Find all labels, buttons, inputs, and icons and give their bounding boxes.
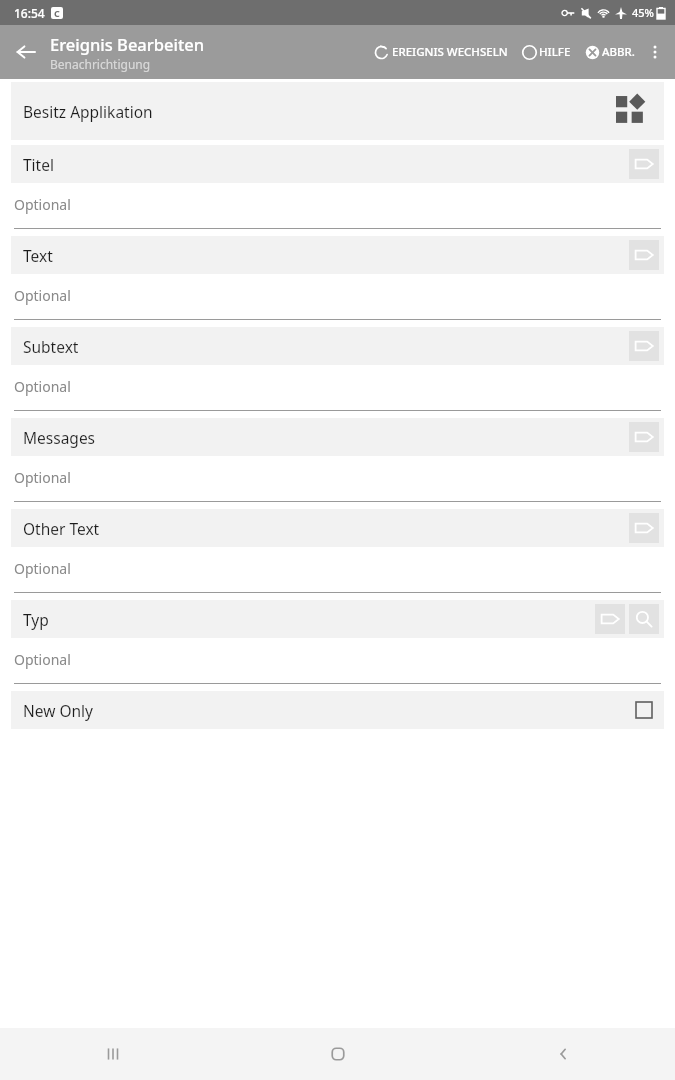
button[interactable]: ABBR.	[581, 38, 639, 66]
button[interactable]: HILFE	[518, 38, 575, 66]
button[interactable]: Besitz Applikation	[11, 82, 664, 140]
staticText: ABBR.	[602, 44, 635, 60]
staticText: Optional	[14, 377, 71, 396]
button[interactable]: EREIGNIS WECHSELN	[370, 38, 512, 66]
staticText: Besitz Applikation	[23, 101, 153, 122]
button[interactable]: Select variable	[629, 331, 659, 361]
staticText: Benachrichtigung	[50, 56, 151, 72]
button[interactable]: Titel	[11, 145, 664, 183]
staticText: Other Text	[23, 518, 100, 539]
button[interactable]: Optional	[14, 274, 661, 320]
staticText: EREIGNIS WECHSELN	[392, 44, 508, 60]
button[interactable]: Other Text	[11, 509, 664, 547]
staticText: 45%	[632, 5, 654, 20]
staticText: Optional	[14, 650, 71, 669]
staticText: Optional	[14, 286, 71, 305]
button[interactable]: Select variable	[595, 604, 625, 634]
staticText: Titel	[23, 154, 54, 175]
staticText: 16:54	[14, 5, 45, 21]
button[interactable]: Select variable	[629, 513, 659, 543]
button[interactable]: Messages	[11, 418, 664, 456]
staticText: HILFE	[539, 44, 571, 60]
staticText: C	[54, 7, 60, 19]
button[interactable]: Text	[11, 236, 664, 274]
button[interactable]: Select variable	[629, 422, 659, 452]
button[interactable]: More options	[639, 36, 671, 68]
button[interactable]: Select variable	[629, 149, 659, 179]
staticText: Subtext	[23, 336, 79, 357]
button[interactable]: Optional	[14, 456, 661, 502]
button[interactable]: Optional	[14, 183, 661, 229]
button[interactable]: Optional	[14, 638, 661, 684]
staticText: Messages	[23, 427, 96, 448]
button[interactable]: Recent apps	[0, 1028, 225, 1080]
staticText: Ereignis Bearbeiten	[50, 33, 205, 55]
button[interactable]: Subtext	[11, 327, 664, 365]
button[interactable]: Optional	[14, 547, 661, 593]
staticText: Text	[23, 245, 53, 266]
staticText: Optional	[14, 468, 71, 487]
button[interactable]: Search	[629, 604, 659, 634]
button[interactable]: Select variable	[629, 240, 659, 270]
staticText: Optional	[14, 559, 71, 578]
button[interactable]: Typ	[11, 600, 664, 638]
staticText: Optional	[14, 195, 71, 214]
button[interactable]: Back	[6, 32, 46, 72]
staticText: New Only	[23, 700, 94, 721]
button[interactable]: Optional	[14, 365, 661, 411]
button[interactable]: Home	[225, 1028, 450, 1080]
staticText: Typ	[23, 609, 49, 630]
button[interactable]: Back	[450, 1028, 675, 1080]
button[interactable]: New Only	[11, 691, 664, 729]
